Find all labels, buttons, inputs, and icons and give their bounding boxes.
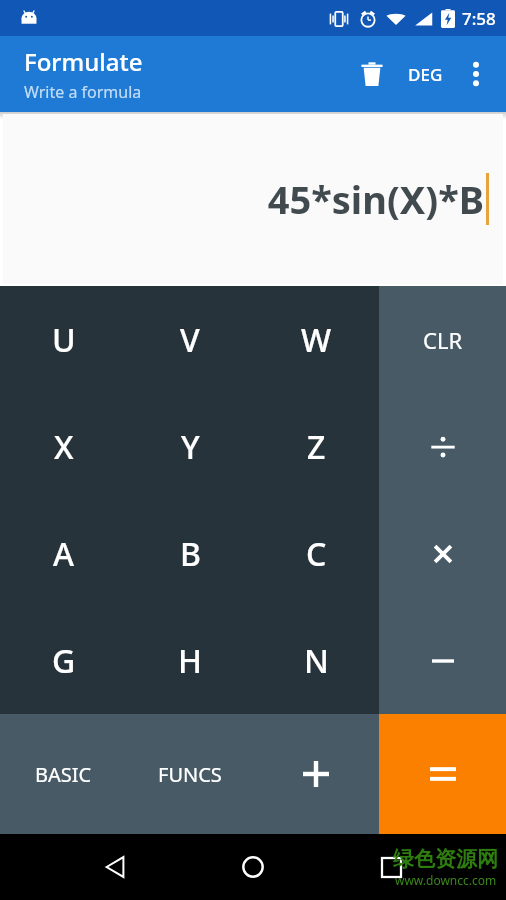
staticText: CLR [423,325,463,355]
staticText: G [52,639,76,683]
button[interactable]: Delete [348,50,396,98]
staticText: N [304,639,329,683]
button[interactable]: Back [92,844,138,890]
staticText: www.downcc.com [395,872,497,888]
button[interactable]: CLR [379,286,506,393]
staticText: 7:58 [462,7,496,30]
button[interactable]: Subtract [379,607,506,714]
button[interactable]: N [253,607,379,714]
button[interactable]: G [0,607,127,714]
button[interactable]: Recent apps [368,844,414,890]
button[interactable]: B [127,500,253,607]
button[interactable]: C [253,500,379,607]
staticText: Formulate [24,45,143,78]
staticText: H [178,639,202,683]
staticText: Y [181,425,200,469]
staticText: U [52,318,76,362]
button[interactable]: A [0,500,127,607]
staticText: V [180,318,200,362]
button[interactable]: Multiply [379,500,506,607]
staticText: X [54,425,74,469]
button[interactable]: Y [127,393,253,500]
staticText: 绿色资源网 [393,846,498,872]
button[interactable]: Home [230,844,276,890]
button[interactable]: Equals [379,714,506,834]
button[interactable]: DEG [396,50,454,98]
staticText: W [301,318,332,362]
button[interactable]: Add [253,714,379,834]
staticText: C [306,532,327,576]
button[interactable]: W [253,286,379,393]
button[interactable]: FUNCS [127,714,253,834]
button[interactable]: U [0,286,127,393]
button[interactable]: V [127,286,253,393]
staticText: DEG [408,63,443,86]
staticText: A [53,532,74,576]
button[interactable]: X [0,393,127,500]
staticText: FUNCS [158,761,222,788]
staticText: 45*sin(X)*B [267,173,484,225]
button[interactable]: BASIC [0,714,127,834]
button[interactable]: 45*sin(X)*B [3,114,503,284]
button[interactable]: Z [253,393,379,500]
staticText: Write a formula [24,81,142,103]
button[interactable]: H [127,607,253,714]
staticText: BASIC [35,761,92,788]
button[interactable]: Divide [379,393,506,500]
button[interactable]: More options [454,52,498,96]
staticText: Z [307,425,326,469]
staticText: B [180,532,201,576]
